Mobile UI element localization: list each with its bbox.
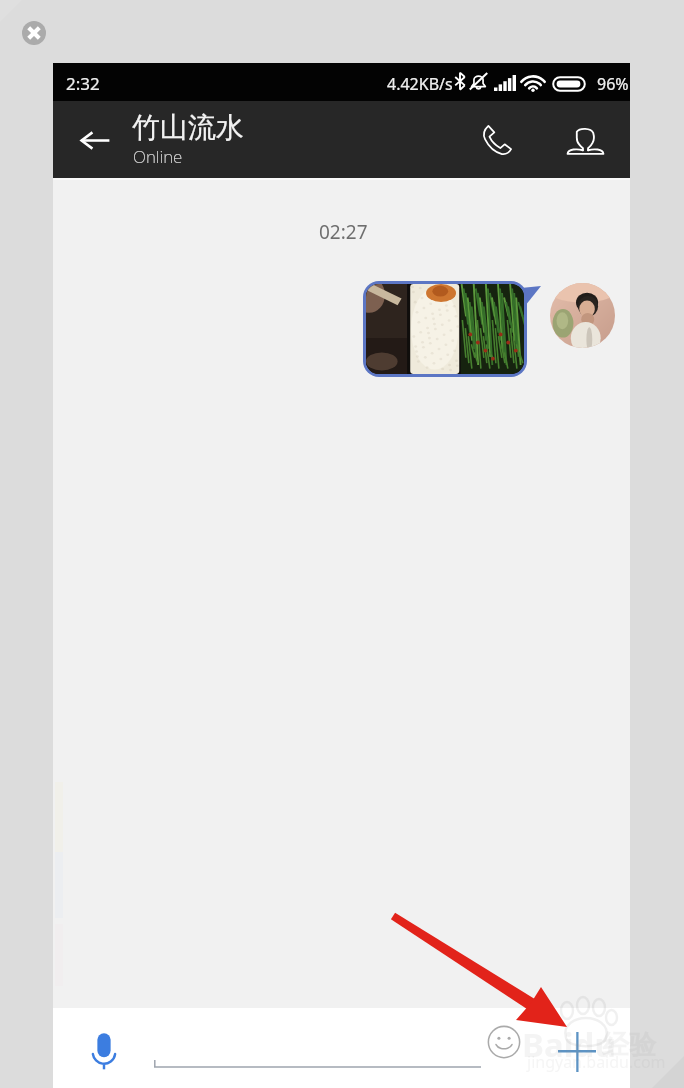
button[interactable]: Voice input bbox=[75, 1017, 121, 1075]
staticText: 竹山流水 bbox=[132, 110, 244, 145]
staticText: Online bbox=[133, 145, 183, 168]
staticText: 4.42KB/s bbox=[387, 73, 453, 95]
staticText: 96% bbox=[597, 73, 629, 95]
staticText: jingyan.baidu.com bbox=[527, 1051, 666, 1073]
button[interactable]: Call bbox=[467, 111, 525, 169]
button[interactable]: Close bbox=[22, 21, 46, 45]
staticText: 2:32 bbox=[66, 72, 100, 95]
button[interactable]: More options bbox=[550, 1015, 606, 1075]
button[interactable]: Photo message bbox=[366, 284, 524, 374]
staticText: 经验 bbox=[602, 1028, 656, 1062]
button[interactable]: Contact profile bbox=[556, 111, 614, 169]
button[interactable]: Emoji bbox=[482, 1020, 526, 1064]
button[interactable]: Avatar bbox=[550, 283, 615, 348]
staticText: 02:27 bbox=[319, 219, 368, 245]
staticText: Baidu bbox=[522, 1022, 616, 1067]
button[interactable]: Back bbox=[66, 111, 124, 169]
